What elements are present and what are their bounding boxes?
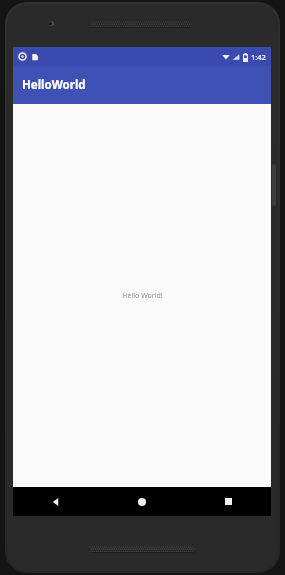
staticText: HelloWorld: [22, 77, 86, 93]
button[interactable]: Back: [13, 487, 99, 516]
button[interactable]: Recent apps: [185, 487, 271, 516]
button[interactable]: HelloWorld: [13, 66, 271, 104]
staticText: 1:42: [251, 52, 266, 62]
staticText: Hello World!: [122, 291, 163, 301]
button[interactable]: Home: [99, 487, 185, 516]
